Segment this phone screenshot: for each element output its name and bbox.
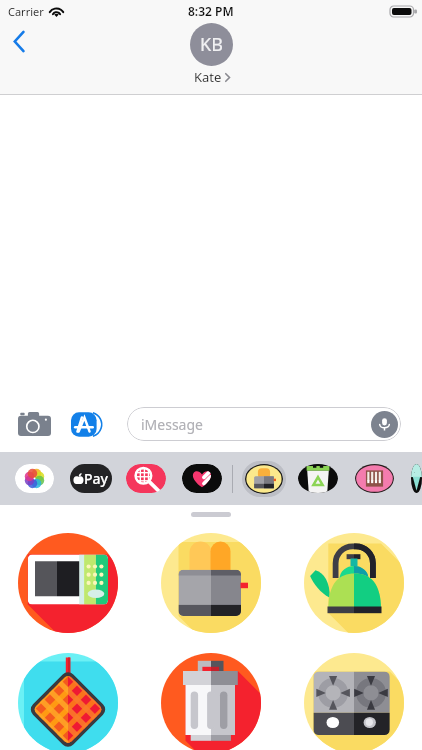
button[interactable]: Photos [15, 464, 54, 493]
button[interactable]: App Store [62, 405, 112, 443]
button[interactable]: Trash can [161, 653, 261, 750]
staticText: iMessage [141, 415, 203, 434]
button[interactable]: KB [190, 23, 233, 86]
staticText: KB [200, 32, 223, 57]
button[interactable]: Cabinet stickers [355, 464, 394, 493]
button[interactable]: Store search [126, 464, 166, 493]
button[interactable]: Toaster [161, 533, 261, 633]
button[interactable]: iMessage [127, 407, 401, 441]
button[interactable]: Gas stove [304, 653, 404, 750]
button[interactable]: Kitchen stickers [242, 461, 286, 497]
button[interactable]: Apple Pay [70, 464, 112, 493]
button[interactable]: Digital Touch [182, 464, 222, 493]
button[interactable]: More stickers [411, 464, 422, 493]
staticText: Carrier [8, 4, 44, 19]
button[interactable]: Pot holder [18, 653, 118, 750]
staticText: Pay [84, 469, 108, 488]
button[interactable]: Dictate [371, 411, 398, 438]
button[interactable]: Back [0, 21, 38, 61]
button[interactable]: Recycle stickers [298, 464, 338, 493]
staticText: Kate [194, 68, 222, 86]
staticText: 8:32 PM [188, 3, 234, 19]
button[interactable]: Camera [8, 407, 60, 441]
button[interactable]: Microwave [18, 533, 118, 633]
button[interactable]: Kettle [304, 533, 404, 633]
